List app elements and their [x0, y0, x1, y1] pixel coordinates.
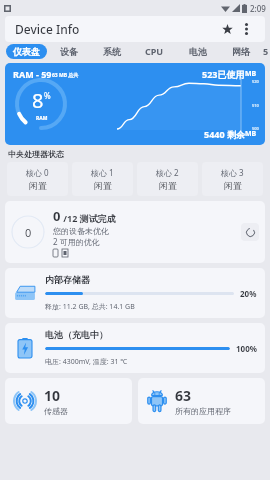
button[interactable]: CPU [133, 42, 176, 60]
staticText: 您的设备未优化 [53, 226, 109, 236]
staticText: 63 [175, 386, 192, 405]
button[interactable]: 核心 0 [7, 162, 68, 196]
staticText: RAM [36, 115, 48, 122]
staticText: 63 MB 总共 [52, 72, 79, 79]
button[interactable]: 系统 [90, 42, 133, 60]
staticText: /12 测试完成 [61, 212, 116, 224]
staticText: 8 [32, 87, 44, 114]
staticText: 510 [252, 103, 259, 108]
button[interactable]: 63 [138, 378, 265, 424]
staticText: 传感器 [44, 406, 68, 416]
button[interactable]: 网络 [219, 42, 262, 60]
button[interactable]: 10 [5, 378, 132, 424]
staticText: 核心 3 [221, 167, 244, 178]
button[interactable]: 核心 2 [137, 162, 198, 196]
staticText: MB [245, 129, 257, 139]
staticText: 520 [252, 79, 259, 84]
staticText: 523已使用 [202, 68, 245, 80]
staticText: 设备 [60, 46, 78, 57]
staticText: 电池 [189, 46, 207, 57]
staticText: 闲置 [94, 180, 112, 191]
staticText: 释放: 11.2 GB, 总共: 14.1 GB [45, 302, 135, 312]
staticText: Device Info [15, 21, 217, 37]
staticText: 闲置 [159, 180, 177, 191]
staticText: 电压: 4300mV, 温度: 31 ℃ [45, 357, 128, 367]
staticText: 核心 0 [26, 167, 49, 178]
button[interactable]: Refresh [241, 223, 259, 241]
button[interactable]: 0 [5, 201, 265, 263]
staticText: 核心 2 [156, 167, 179, 178]
staticText: 核心 1 [91, 167, 114, 178]
staticText: 中央处理器状态 [8, 149, 64, 159]
staticText: 电池（充电中） [45, 329, 108, 340]
staticText: RAM - 59 [13, 68, 52, 80]
staticText: 2:09 [250, 3, 266, 14]
button[interactable]: More options [237, 20, 255, 38]
staticText: 0 [53, 207, 61, 225]
staticText: 5440 剩余 [204, 128, 245, 140]
button[interactable]: 仪表盘 [6, 44, 47, 59]
button[interactable]: 核心 1 [72, 162, 133, 196]
button[interactable]: 核心 3 [202, 162, 263, 196]
staticText: 内部存储器 [45, 274, 90, 285]
button[interactable]: RAM - 59 [5, 63, 265, 145]
staticText: 所有的应用程序 [175, 406, 231, 416]
staticText: 0 [25, 225, 32, 240]
staticText: % [44, 90, 51, 101]
button[interactable]: Favorite [217, 19, 237, 39]
staticText: MB [245, 69, 257, 79]
button[interactable]: 电池 [176, 42, 219, 60]
staticText: 10 [44, 386, 61, 405]
button[interactable]: 5 [262, 42, 270, 60]
button[interactable]: 内部存储器 [5, 268, 265, 318]
staticText: 系统 [103, 46, 121, 57]
staticText: 20% [240, 288, 257, 299]
staticText: 100% [236, 343, 257, 354]
staticText: CPU [145, 45, 164, 57]
staticText: 网络 [232, 46, 250, 57]
staticText: 仪表盘 [13, 46, 40, 57]
button[interactable]: 电池（充电中） [5, 323, 265, 373]
staticText: 闲置 [29, 180, 47, 191]
button[interactable]: 设备 [47, 42, 90, 60]
staticText: 5 [263, 45, 269, 57]
staticText: 闲置 [224, 180, 242, 191]
staticText: 500 [252, 126, 259, 131]
staticText: 2 可用的优化 [53, 236, 100, 247]
